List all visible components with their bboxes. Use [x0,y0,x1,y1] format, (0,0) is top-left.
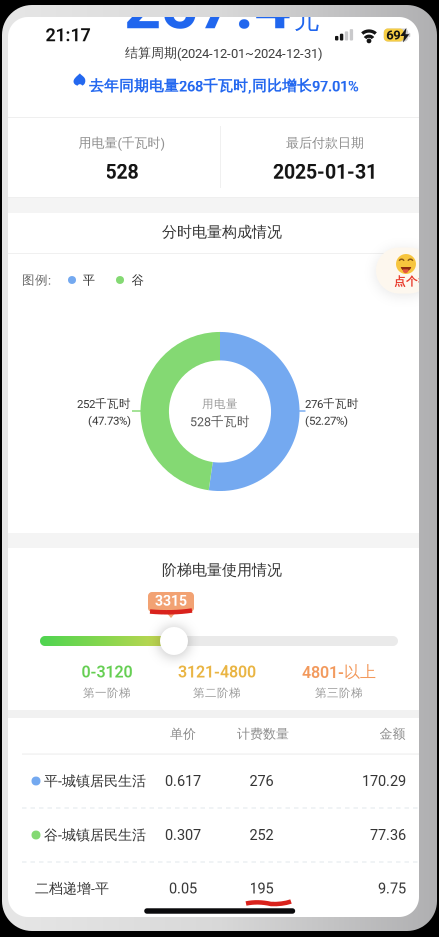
staticText: 276千瓦时 [305,396,359,411]
staticText: 195 [249,880,273,897]
staticText: 0.617 [165,772,201,789]
button[interactable]: 点个赞 [376,247,432,293]
staticText: 谷 [131,272,144,288]
staticText: 0.307 [165,826,201,843]
staticText: 计费数量 [237,726,289,742]
staticText: (47.73%) [88,414,131,427]
staticText: 去年同期电量268千瓦时,同比增长97.01% [89,77,359,95]
staticText: 分时电量构成情况 [162,223,282,241]
button[interactable]: 阶梯电量滑块 [160,627,188,655]
staticText: 谷-城镇居民生活 [44,826,146,844]
staticText: 2025-01-31 [273,161,377,183]
staticText: 528千瓦时 [190,414,250,429]
staticText: 4801-以上 [302,662,376,682]
staticText: 图例: [22,272,51,288]
staticText: 单价 [170,726,196,742]
staticText: 最后付款日期 [286,135,364,151]
staticText: (52.27%) [305,414,348,427]
staticText: 528 [105,161,138,183]
staticText: 元 [294,3,320,36]
staticText: 3315 [155,593,187,609]
staticText: 252千瓦时 [77,396,131,411]
staticText: 257.4 [124,0,291,44]
staticText: 平-城镇居民生活 [44,772,146,790]
staticText: 用电量(千瓦时) [78,135,165,151]
staticText: 第一阶梯 [83,686,131,700]
staticText: 276 [249,772,273,789]
staticText: 9.75 [378,880,406,897]
staticText: 用电量 [202,397,238,411]
staticText: 170.29 [362,772,406,789]
staticText: 21:17 [45,24,90,46]
staticText: 结算周期(2024-12-01~2024-12-31) [125,45,323,61]
staticText: 金额 [379,726,405,742]
staticText: 252 [249,826,273,843]
staticText: 阶梯电量使用情况 [162,561,282,579]
staticText: 3121-4800 [178,663,256,681]
staticText: 平 [82,272,95,288]
staticText: 0.05 [169,880,197,897]
staticText: 第二阶梯 [193,686,241,700]
staticText: 0-3120 [81,663,132,681]
staticText: 二档递增-平 [35,880,109,897]
staticText: 第三阶梯 [315,686,363,700]
staticText: 69 [386,27,400,43]
staticText: 77.36 [370,826,406,843]
staticText: 点个赞 [394,274,430,289]
